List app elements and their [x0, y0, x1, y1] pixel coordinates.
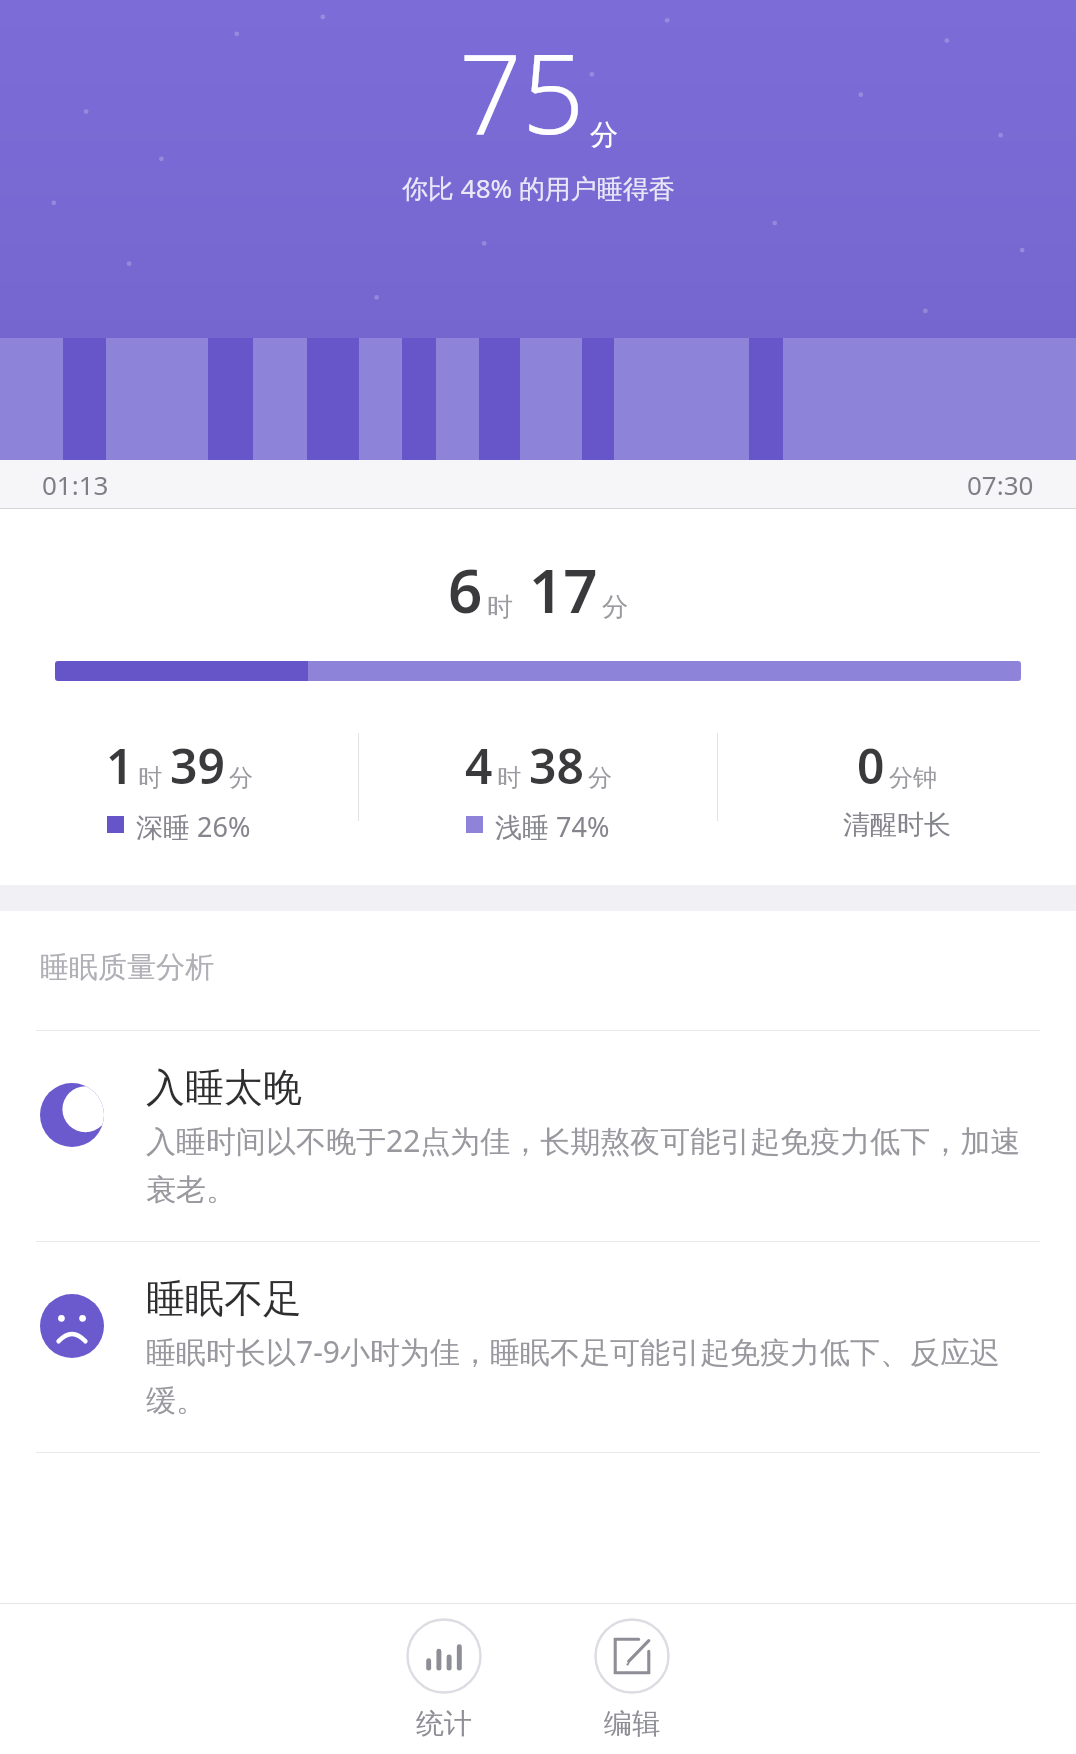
staticText: 分	[229, 763, 253, 793]
staticText: 入睡太晚	[146, 1063, 302, 1112]
staticText: 0	[857, 733, 885, 798]
other: 编辑	[594, 1618, 670, 1694]
staticText: 01:13	[42, 467, 109, 502]
staticText: 睡眠质量分析	[40, 949, 214, 986]
staticText: 你比 48% 的用户睡得香	[402, 170, 675, 206]
other: Late bedtime	[40, 1083, 104, 1147]
button[interactable]: 编辑	[580, 1614, 684, 1745]
staticText: 深睡 26%	[136, 808, 251, 841]
staticText: 时	[487, 591, 513, 624]
staticText: 6	[448, 549, 483, 631]
staticText: 75	[459, 16, 585, 166]
staticText: 4	[465, 733, 493, 798]
staticText: 编辑	[604, 1706, 660, 1741]
staticText: 07:30	[967, 467, 1034, 502]
staticText: 清醒时长	[843, 808, 951, 841]
staticText: 睡眠时长以7-9小时为佳，睡眠不足可能引起免疫力低下、反应迟缓。	[146, 1331, 1032, 1420]
staticText: 统计	[416, 1706, 472, 1741]
other: Not enough sleep	[40, 1294, 104, 1358]
staticText: 时	[138, 763, 162, 793]
staticText: 38	[529, 733, 584, 798]
staticText: 分	[590, 117, 618, 152]
button[interactable]: Not enough sleep	[0, 1242, 1076, 1452]
staticText: 1	[106, 733, 134, 798]
button[interactable]: 统计	[392, 1614, 496, 1745]
staticText: 浅睡 74%	[495, 808, 610, 841]
staticText: 分	[602, 591, 628, 624]
staticText: 分钟	[889, 763, 937, 793]
other: 统计	[406, 1618, 482, 1694]
staticText: 时	[497, 763, 521, 793]
button[interactable]: Late bedtime	[0, 1031, 1076, 1241]
staticText: 17	[529, 549, 598, 631]
staticText: 39	[170, 733, 225, 798]
staticText: 入睡时间以不晚于22点为佳，长期熬夜可能引起免疫力低下，加速衰老。	[146, 1120, 1032, 1209]
staticText: 睡眠不足	[146, 1274, 302, 1323]
staticText: 分	[588, 763, 612, 793]
